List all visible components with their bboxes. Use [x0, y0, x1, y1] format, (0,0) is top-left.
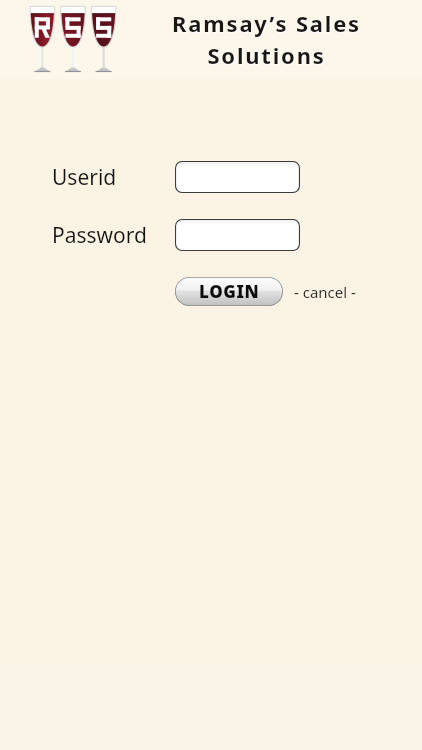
staticText: Ramsay’s Sales — [173, 9, 362, 39]
button[interactable]: Userid input — [175, 161, 300, 193]
staticText: Solutions — [208, 41, 327, 71]
staticText: Userid — [52, 163, 117, 192]
staticText: Solutions — [207, 40, 326, 70]
staticText: - cancel - — [294, 282, 356, 302]
button[interactable]: - cancel - — [292, 278, 358, 306]
staticText: LOGIN — [199, 280, 260, 303]
button[interactable]: Password input — [175, 219, 300, 251]
button[interactable]: LOGIN — [175, 277, 283, 306]
staticText: Ramsay’s Sales — [172, 8, 361, 38]
staticText: Password — [52, 221, 147, 250]
